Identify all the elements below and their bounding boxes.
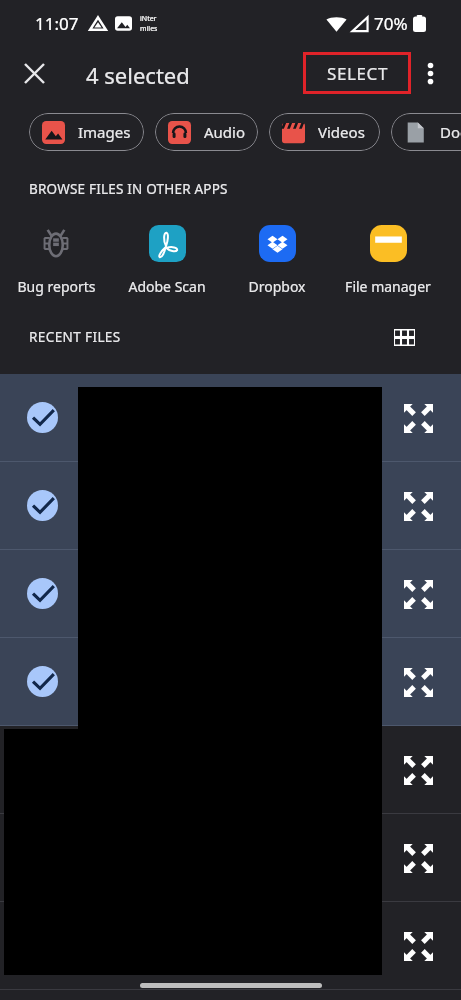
staticText: Adobe Scan bbox=[128, 277, 206, 296]
button[interactable]: Adobe Scan bbox=[112, 222, 222, 302]
staticText: Bug reports bbox=[17, 277, 96, 296]
button[interactable]: Selected bbox=[0, 638, 461, 725]
staticText: Images bbox=[78, 122, 131, 142]
staticText: 70% bbox=[374, 12, 408, 35]
button[interactable]: Expand bbox=[398, 838, 438, 878]
button[interactable]: Audio bbox=[155, 113, 258, 151]
button[interactable]: Videos bbox=[269, 113, 380, 151]
staticText: SELECT bbox=[327, 62, 388, 85]
staticText: BROWSE FILES IN OTHER APPS bbox=[29, 180, 228, 198]
button[interactable]: Selected bbox=[27, 490, 58, 521]
button[interactable]: Doc bbox=[391, 113, 461, 151]
button[interactable]: Expand bbox=[398, 398, 438, 438]
button[interactable]: Expand bbox=[398, 662, 438, 702]
button[interactable]: Selected bbox=[27, 666, 58, 697]
button[interactable]: Bug reports bbox=[1, 222, 111, 302]
button[interactable]: Selected bbox=[0, 462, 461, 549]
button[interactable]: Selected bbox=[27, 578, 58, 609]
button[interactable]: Expand bbox=[0, 814, 461, 901]
button[interactable]: More options bbox=[410, 53, 450, 93]
staticText: 11:07 bbox=[35, 12, 79, 35]
button[interactable]: Grid view bbox=[386, 319, 422, 355]
staticText: Doc bbox=[440, 122, 461, 142]
staticText: RECENT FILES bbox=[29, 328, 121, 346]
button[interactable]: File manager bbox=[333, 222, 443, 302]
staticText: File manager bbox=[345, 277, 431, 296]
button[interactable]: Expand bbox=[398, 486, 438, 526]
button[interactable]: Dropbox bbox=[222, 222, 332, 302]
button[interactable]: Expand bbox=[0, 726, 461, 813]
button[interactable]: Expand bbox=[398, 574, 438, 614]
button[interactable]: Expand bbox=[0, 902, 461, 989]
staticText: iNter bbox=[140, 14, 157, 24]
button[interactable]: Expand bbox=[398, 926, 438, 966]
button[interactable]: Expand bbox=[398, 750, 438, 790]
staticText: miles bbox=[140, 24, 158, 34]
button[interactable]: SELECT bbox=[303, 52, 411, 94]
button[interactable]: Images bbox=[29, 113, 144, 151]
button[interactable]: Selected bbox=[27, 402, 58, 433]
staticText: Dropbox bbox=[248, 277, 306, 296]
staticText: Audio bbox=[204, 122, 246, 142]
button[interactable]: Selected bbox=[0, 550, 461, 637]
staticText: Videos bbox=[318, 122, 365, 142]
button[interactable]: Selected bbox=[0, 374, 461, 461]
button[interactable]: Close bbox=[14, 53, 54, 93]
staticText: 4 selected bbox=[86, 60, 190, 90]
